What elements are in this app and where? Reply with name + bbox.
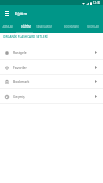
staticText: Rastgele (13, 50, 27, 55)
button[interactable]: ADIMLAR (0, 21, 15, 33)
staticText: SKORLAR (87, 25, 99, 29)
staticText: ORGANİK FLASHCARD SETLERİ (3, 35, 48, 39)
button[interactable]: EĞİTİM (17, 21, 34, 33)
staticText: Favoriler (13, 65, 27, 70)
staticText: SINAVLARIM (36, 25, 52, 29)
button[interactable]: SKORLAR (84, 21, 102, 33)
staticText: Bookmark (13, 79, 30, 84)
staticText: BOOKMARK (64, 25, 79, 29)
staticText: Eğitim (15, 11, 28, 16)
button[interactable]: BOOKMARK (60, 21, 82, 33)
button[interactable]: Bookmark (0, 74, 103, 89)
staticText: 12:30 (93, 1, 101, 5)
button[interactable]: Rastgele (0, 45, 103, 60)
staticText: EĞİTİM (21, 25, 31, 29)
button[interactable]: Open navigation menu (0, 5, 14, 21)
staticText: ADIMLAR (2, 25, 13, 29)
button[interactable]: Geçmiş (0, 89, 103, 104)
button[interactable]: SINAVLARIM (33, 21, 55, 33)
button[interactable]: Favoriler (0, 60, 103, 75)
staticText: Geçmiş (13, 94, 25, 99)
